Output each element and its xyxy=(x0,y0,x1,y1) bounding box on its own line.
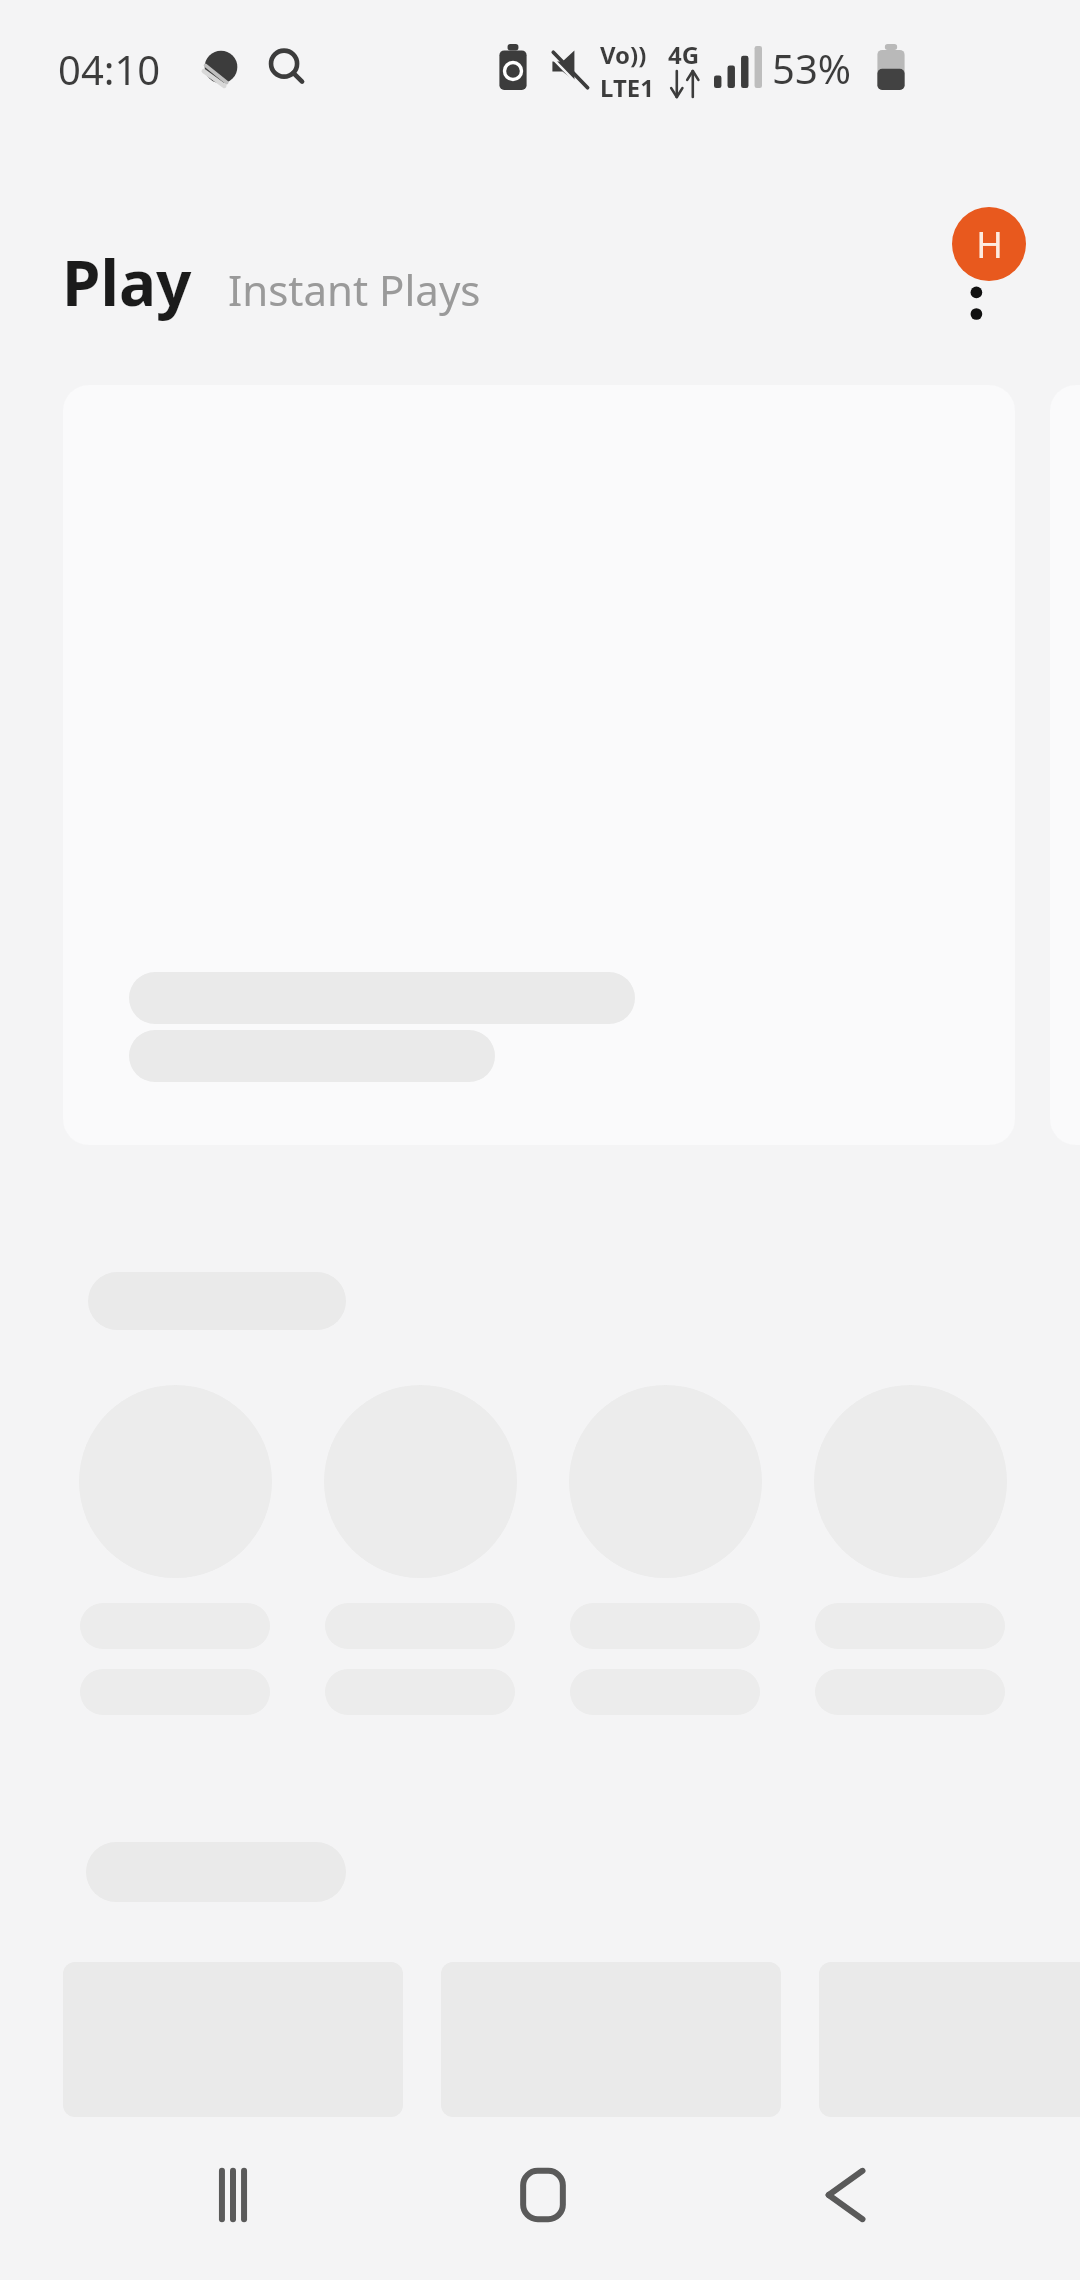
button[interactable] xyxy=(324,1385,517,1578)
staticText: H xyxy=(976,220,1003,269)
staticText: 53% xyxy=(772,41,851,95)
button[interactable] xyxy=(79,1385,272,1578)
button[interactable]: Play xyxy=(62,240,192,324)
button[interactable]: More options xyxy=(938,230,1018,350)
button[interactable]: Recents xyxy=(168,2140,298,2250)
staticText: 4G xyxy=(668,38,700,71)
button[interactable]: Back xyxy=(778,2140,908,2250)
button[interactable] xyxy=(63,385,1015,1145)
button[interactable]: Instant Plays xyxy=(228,261,481,318)
button[interactable] xyxy=(569,1385,762,1578)
staticText: 04:10 xyxy=(58,42,161,96)
button[interactable]: Account xyxy=(952,207,1026,281)
staticText: LTE1 xyxy=(600,71,654,104)
button[interactable] xyxy=(814,1385,1007,1578)
staticText: Vo)) xyxy=(600,38,647,71)
button[interactable]: Home xyxy=(478,2140,608,2250)
